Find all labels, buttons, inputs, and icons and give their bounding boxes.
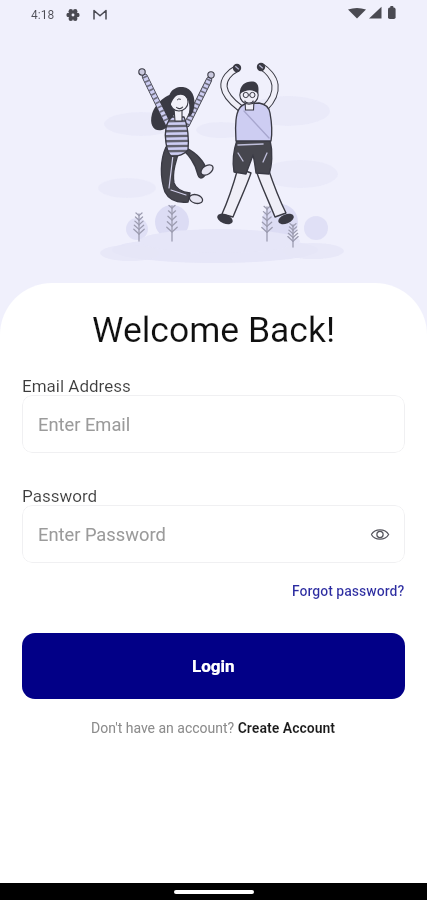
button[interactable]: Don't have an account? Create Account: [91, 720, 336, 736]
staticText: Enter Email: [38, 414, 131, 435]
staticText: Welcome Back!: [0, 309, 427, 351]
button[interactable]: Login: [22, 633, 405, 699]
button[interactable]: Enter Email: [22, 395, 405, 453]
button[interactable]: Forgot password?: [292, 583, 405, 599]
staticText: Don't have an account? Create Account: [91, 720, 336, 736]
staticText: Enter Password: [38, 524, 166, 545]
staticText: Password: [22, 486, 98, 506]
staticText: Login: [192, 656, 235, 676]
button[interactable]: Enter Password: [22, 505, 405, 563]
staticText: Email Address: [22, 376, 131, 396]
other: Show password: [371, 528, 389, 541]
staticText: 4:18: [31, 8, 55, 22]
